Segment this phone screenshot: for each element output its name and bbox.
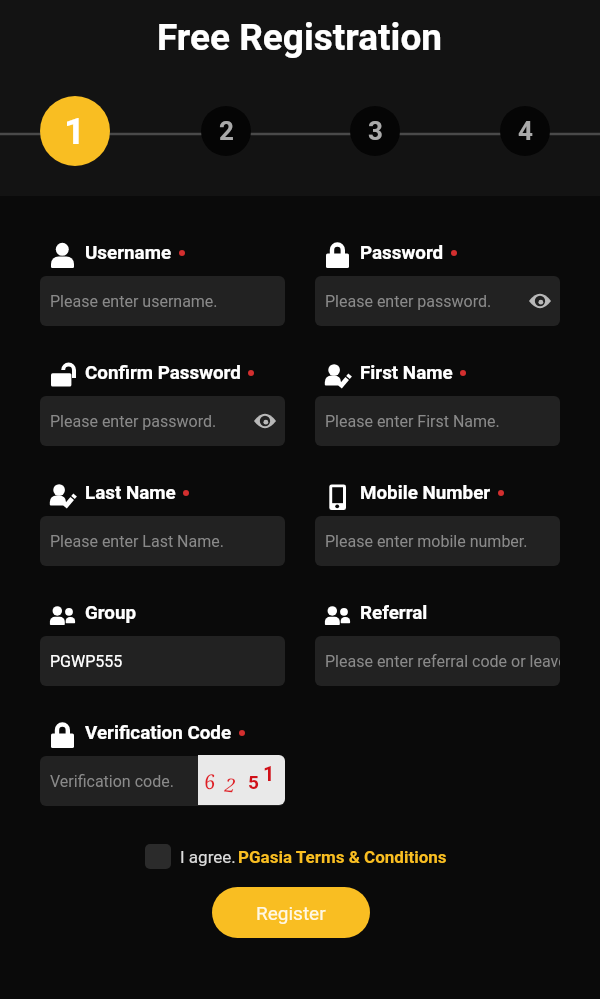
button[interactable]: I agree. (180, 844, 447, 869)
button[interactable]: Toggle password visibility (253, 409, 277, 433)
staticText: Username (85, 242, 172, 264)
button[interactable]: Confirm Password (40, 356, 254, 390)
button[interactable]: PGWP555 (40, 636, 285, 686)
staticText: 2 (224, 771, 237, 798)
staticText: Free Registration (157, 16, 443, 59)
staticText: Referral (360, 602, 428, 624)
staticText: 4 (518, 116, 533, 146)
staticText: Password (360, 242, 444, 264)
staticText: PGasia Terms & Conditions (238, 847, 447, 867)
staticText: Last Name (85, 482, 176, 504)
button[interactable]: Register (212, 887, 370, 938)
button[interactable]: Toggle password visibility (528, 289, 552, 313)
button[interactable]: Last Name (40, 476, 189, 510)
button[interactable]: Username (40, 236, 185, 270)
button[interactable]: Please enter password. (40, 396, 285, 446)
button[interactable]: Verification Code (40, 716, 245, 750)
staticText: I agree. (180, 847, 236, 867)
button[interactable]: Password (315, 236, 457, 270)
button[interactable]: Please enter Last Name. (40, 516, 285, 566)
staticText: PGWP555 (50, 652, 123, 671)
staticText: 3 (368, 116, 383, 146)
button[interactable]: Refresh captcha (198, 755, 285, 805)
staticText: 5 (248, 771, 259, 793)
button[interactable]: 4 (500, 106, 550, 156)
button[interactable]: First Name (315, 356, 466, 390)
staticText: 6 (202, 767, 218, 796)
staticText: Please enter mobile number. (325, 532, 528, 551)
staticText: Please enter First Name. (325, 412, 500, 431)
staticText: Verification Code (85, 722, 232, 744)
staticText: 1 (64, 110, 86, 153)
staticText: Register (256, 902, 326, 924)
button[interactable]: Group (40, 596, 137, 630)
staticText: Verification code. (50, 772, 174, 791)
button[interactable]: Verification code. (40, 756, 285, 806)
staticText: Mobile Number (360, 482, 491, 504)
staticText: Please enter password. (50, 412, 217, 431)
button[interactable]: Referral (315, 596, 428, 630)
button[interactable]: Mobile Number (315, 476, 504, 510)
staticText: Confirm Password (85, 362, 241, 384)
button[interactable]: I agree checkbox (145, 844, 171, 869)
button[interactable]: Please enter password. (315, 276, 560, 326)
staticText: Group (85, 602, 137, 624)
staticText: Please enter referral code or leave blan… (325, 652, 560, 671)
staticText: First Name (360, 362, 453, 384)
button[interactable]: Please enter referral code or leave blan… (315, 636, 560, 686)
button[interactable]: Please enter First Name. (315, 396, 560, 446)
staticText: Please enter password. (325, 292, 492, 311)
button[interactable]: Please enter mobile number. (315, 516, 560, 566)
button[interactable]: 3 (350, 106, 400, 156)
staticText: Please enter username. (50, 292, 218, 311)
staticText: 1 (263, 762, 275, 785)
button[interactable]: 1 (40, 96, 110, 166)
staticText: Please enter Last Name. (50, 532, 224, 551)
staticText: 2 (219, 116, 234, 146)
button[interactable]: Please enter username. (40, 276, 285, 326)
button[interactable]: 2 (201, 106, 251, 156)
